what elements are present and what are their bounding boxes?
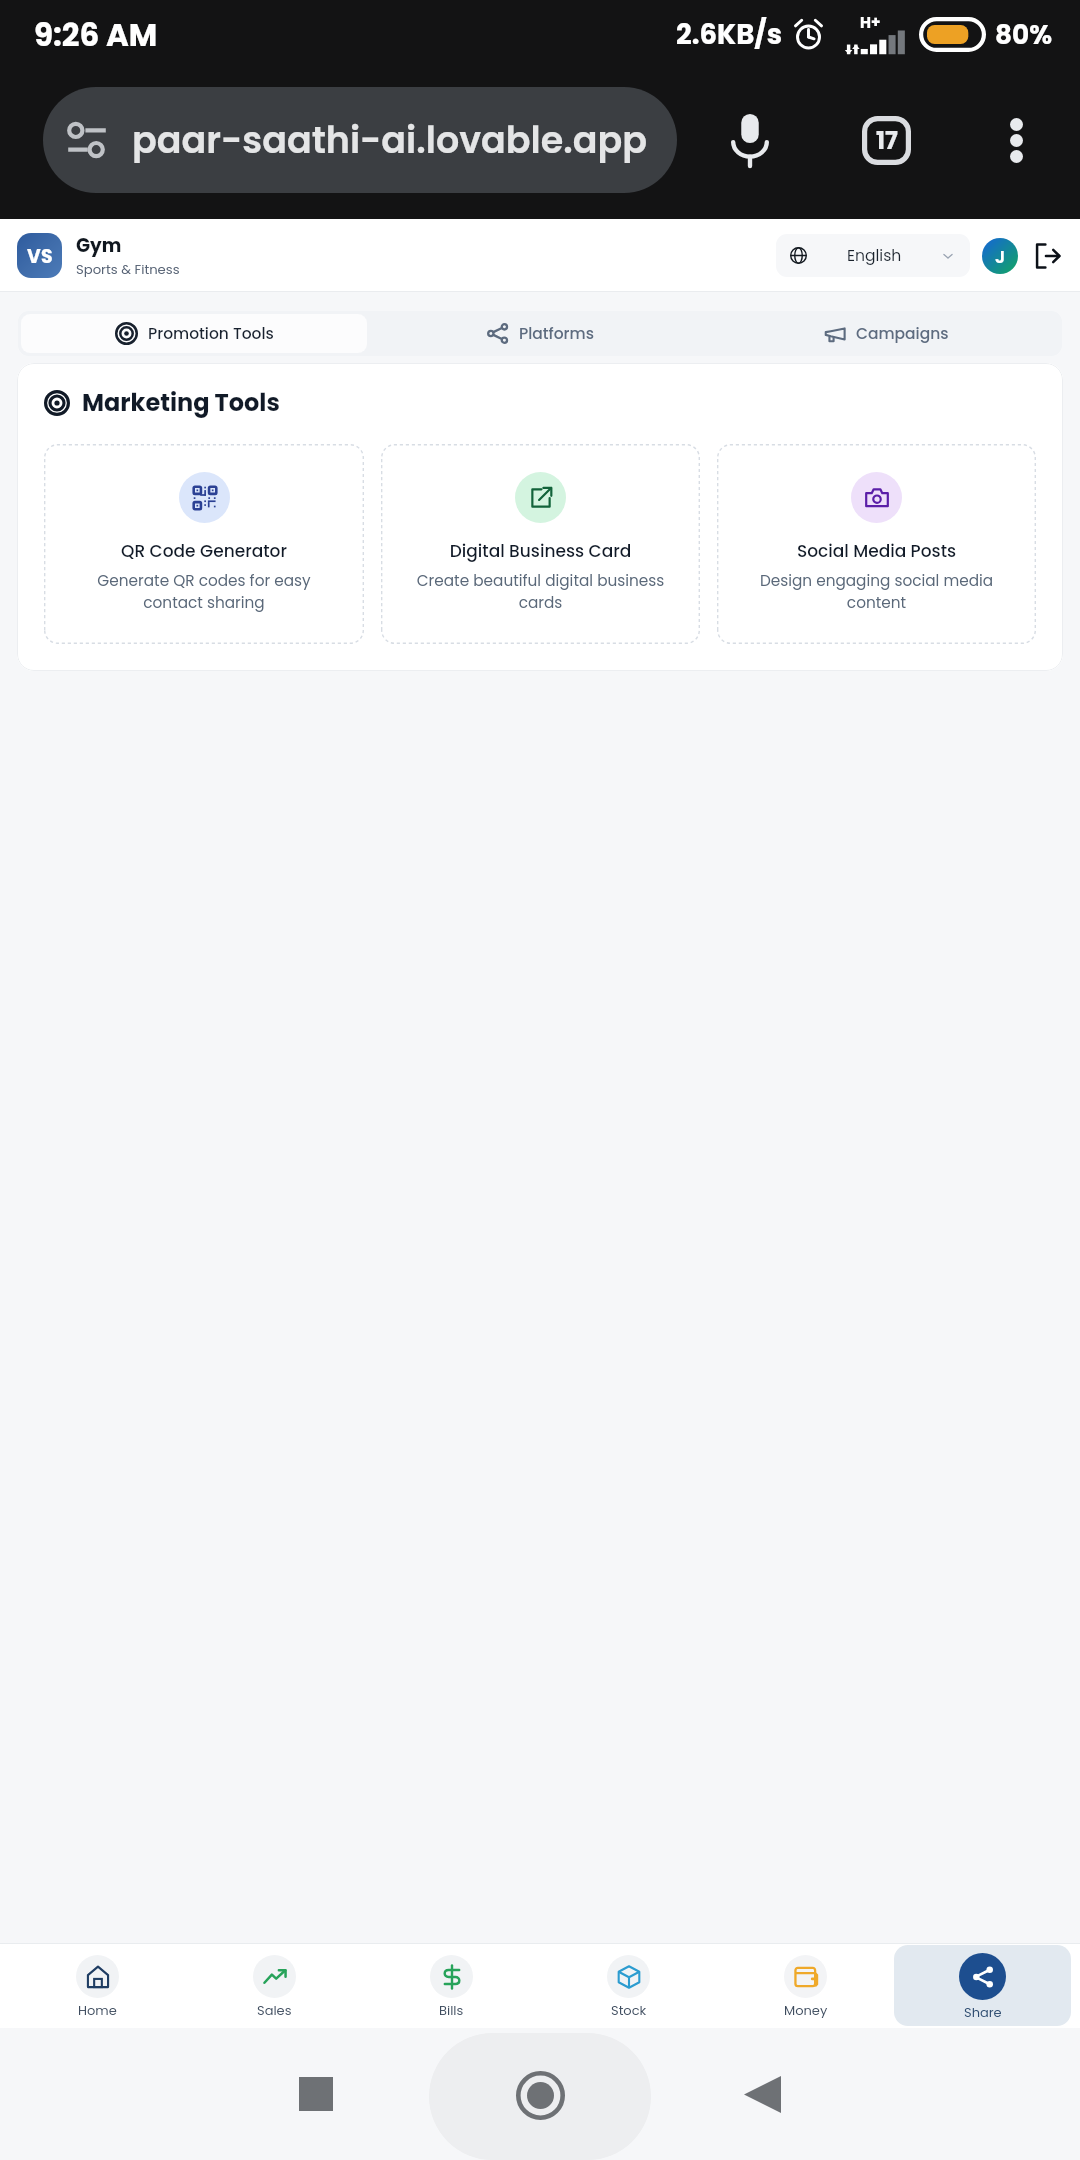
button[interactable]: Digital Business Card bbox=[381, 444, 700, 644]
button[interactable]: Stock bbox=[540, 1945, 717, 2026]
staticText: paar-saathi-ai.lovable.app bbox=[132, 115, 647, 166]
staticText: Stock bbox=[611, 2001, 647, 2019]
staticText: Gym bbox=[76, 233, 122, 259]
button[interactable]: paar-saathi-ai.lovable.app bbox=[43, 87, 677, 193]
staticText: 80% bbox=[995, 16, 1053, 53]
staticText: Home bbox=[78, 2001, 117, 2019]
button[interactable]: Sales bbox=[186, 1945, 363, 2026]
staticText: Design engaging social media content bbox=[748, 570, 1005, 613]
button[interactable]: Tabs bbox=[840, 94, 932, 186]
staticText: Create beautiful digital business cards bbox=[412, 570, 669, 613]
staticText: English bbox=[847, 245, 902, 267]
staticText: Bills bbox=[439, 2001, 464, 2019]
button[interactable]: More options bbox=[970, 94, 1062, 186]
staticText: Promotion Tools bbox=[148, 323, 274, 345]
staticText: VS bbox=[27, 243, 53, 269]
staticText: Digital Business Card bbox=[412, 539, 669, 563]
staticText: H+ bbox=[860, 12, 881, 33]
staticText: 9:26 AM bbox=[34, 13, 158, 56]
staticText: Share bbox=[964, 2003, 1002, 2021]
button[interactable]: Bills bbox=[363, 1945, 540, 2026]
button[interactable]: Promotion Tools bbox=[21, 314, 367, 353]
button[interactable]: English bbox=[776, 234, 970, 277]
staticText: 2.6KB/s bbox=[676, 15, 783, 53]
button[interactable]: Back bbox=[712, 2044, 812, 2144]
button[interactable]: Share bbox=[894, 1945, 1071, 2026]
staticText: QR Code Generator bbox=[75, 539, 333, 563]
staticText: 17 bbox=[876, 124, 898, 158]
staticText: Social Media Posts bbox=[748, 539, 1005, 563]
button[interactable]: Voice search bbox=[704, 94, 796, 186]
button[interactable]: Home bbox=[9, 1945, 186, 2026]
button[interactable]: Campaigns bbox=[713, 314, 1059, 353]
button[interactable]: Platforms bbox=[367, 314, 713, 353]
staticText: J bbox=[995, 244, 1006, 269]
button[interactable]: Recents bbox=[266, 2044, 366, 2144]
staticText: Generate QR codes for easy contact shari… bbox=[75, 570, 333, 613]
staticText: Money bbox=[784, 2001, 828, 2019]
staticText: Campaigns bbox=[856, 323, 949, 345]
button[interactable]: J bbox=[982, 238, 1018, 274]
staticText: Marketing Tools bbox=[82, 386, 280, 420]
staticText: Platforms bbox=[519, 323, 594, 345]
staticText: Sports & Fitness bbox=[76, 260, 180, 278]
button[interactable]: Log out bbox=[1028, 236, 1068, 276]
button[interactable]: Money bbox=[717, 1945, 894, 2026]
button[interactable]: Social Media Posts bbox=[717, 444, 1036, 644]
staticText: Sales bbox=[257, 2001, 292, 2019]
button[interactable]: Home bbox=[490, 2045, 590, 2145]
button[interactable]: QR Code Generator bbox=[44, 444, 364, 644]
